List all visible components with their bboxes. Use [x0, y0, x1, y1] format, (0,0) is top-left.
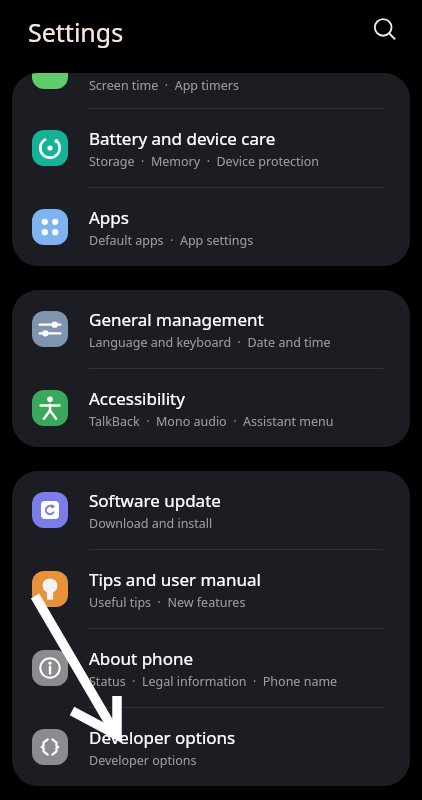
staticText: About phone	[89, 647, 194, 670]
staticText: Tips and user manual	[89, 568, 261, 591]
staticText: Useful tips · New features	[89, 594, 246, 611]
staticText: Apps	[89, 206, 129, 229]
button[interactable]: Apps	[12, 188, 410, 266]
button[interactable]: Developer options	[12, 708, 410, 786]
staticText: Download and install	[89, 515, 213, 532]
button[interactable]: Screen time · App timers	[12, 73, 410, 108]
button[interactable]: Tips and user manual	[12, 550, 410, 628]
staticText: Developer options	[89, 726, 236, 749]
staticText: Accessibility	[89, 387, 185, 410]
staticText: Language and keyboard · Date and time	[89, 334, 331, 351]
button[interactable]: General management	[12, 290, 410, 368]
staticText: Default apps · App settings	[89, 232, 254, 249]
staticText: Battery and device care	[89, 127, 276, 150]
staticText: Storage · Memory · Device protection	[89, 153, 320, 170]
staticText: Status · Legal information · Phone name	[89, 673, 338, 690]
staticText: General management	[89, 308, 264, 331]
staticText: Settings	[28, 15, 124, 49]
button[interactable]: Software update	[12, 471, 410, 549]
staticText: TalkBack · Mono audio · Assistant menu	[89, 413, 334, 430]
staticText: Screen time · App timers	[89, 77, 239, 94]
button[interactable]: About phone	[12, 629, 410, 707]
button[interactable]: Accessibility	[12, 369, 410, 447]
button[interactable]: Search	[363, 8, 407, 52]
staticText: Developer options	[89, 752, 197, 769]
button[interactable]: Battery and device care	[12, 109, 410, 187]
staticText: Software update	[89, 489, 221, 512]
